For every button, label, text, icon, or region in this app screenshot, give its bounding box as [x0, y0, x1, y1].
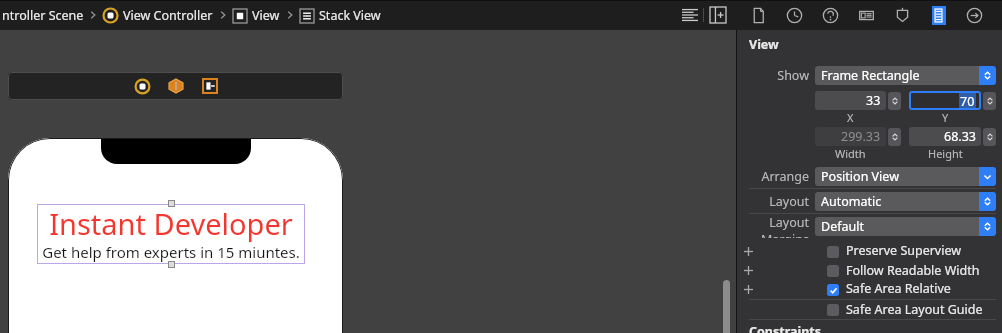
button[interactable]: History inspector: [776, 2, 812, 28]
staticText: Height: [928, 146, 963, 161]
button[interactable]: Frame Rectangle: [815, 66, 996, 85]
button[interactable]: Safe Area Relative Margins: [737, 280, 1002, 299]
button[interactable]: 68.33: [909, 127, 996, 146]
button[interactable]: Attributes inspector: [884, 2, 920, 28]
button[interactable]: Exit: [200, 76, 220, 96]
staticText: Y: [942, 110, 949, 125]
button[interactable]: 33: [815, 91, 901, 110]
staticText: ntroller Scene: [2, 7, 84, 24]
button[interactable]: Stack View: [299, 7, 382, 24]
staticText: Width: [835, 146, 866, 161]
staticText: Follow Readable Width: [846, 262, 980, 279]
button[interactable]: Stepper: [888, 92, 901, 110]
staticText: Frame Rectangle: [821, 67, 920, 84]
button[interactable]: View Controller: [102, 7, 214, 24]
staticText: 68.33: [944, 128, 976, 145]
button[interactable]: Quick help: [812, 2, 848, 28]
button[interactable]: Add editor: [704, 1, 732, 29]
button[interactable]: Automatic: [815, 192, 996, 211]
button[interactable]: Safe Area Layout Guide: [737, 300, 1002, 319]
staticText: 70: [960, 93, 975, 108]
staticText: Arrange: [761, 168, 809, 185]
staticText: Get help from experts in 15 miuntes.: [37, 242, 305, 262]
button[interactable]: Stepper: [983, 92, 996, 110]
staticText: Instant Developer: [37, 204, 305, 243]
button[interactable]: Default: [815, 217, 996, 236]
staticText: Layout: [769, 193, 809, 210]
button[interactable]: Instant Developer: [37, 204, 305, 264]
staticText: X: [847, 110, 854, 125]
button[interactable]: Stepper: [888, 128, 901, 146]
button[interactable]: View controller: [132, 76, 152, 96]
staticText: Layout Margins: [737, 214, 809, 238]
staticText: Default: [821, 218, 864, 235]
staticText: Position View: [821, 168, 899, 185]
button[interactable]: Identity inspector: [848, 2, 884, 28]
button[interactable]: Connections inspector: [956, 2, 992, 28]
staticText: Constraints: [749, 323, 822, 333]
staticText: View: [749, 36, 779, 53]
button[interactable]: 70: [909, 91, 981, 110]
staticText: Safe Area Layout Guide: [846, 301, 983, 318]
button[interactable]: File inspector: [740, 2, 776, 28]
staticText: View Controller: [123, 7, 213, 24]
staticText: Stack View: [319, 7, 381, 24]
button[interactable]: Preserve Superview Margins: [737, 242, 1002, 261]
button[interactable]: Stepper: [983, 128, 996, 146]
button[interactable]: Position View: [815, 167, 996, 186]
staticText: 299.33: [841, 128, 881, 145]
staticText: 33: [866, 92, 881, 109]
staticText: Preserve Superview Margins: [846, 242, 1002, 261]
button[interactable]: View: [232, 7, 281, 24]
button[interactable]: 299.33: [815, 127, 901, 146]
button[interactable]: First responder: [166, 76, 186, 96]
staticText: View: [252, 7, 280, 24]
staticText: Automatic: [821, 193, 882, 210]
button[interactable]: Alignment: [677, 2, 703, 28]
staticText: Show: [777, 67, 809, 84]
staticText: Safe Area Relative Margins: [846, 280, 1002, 299]
button[interactable]: Size inspector: [920, 2, 956, 28]
button[interactable]: Follow Readable Width: [737, 261, 1002, 280]
